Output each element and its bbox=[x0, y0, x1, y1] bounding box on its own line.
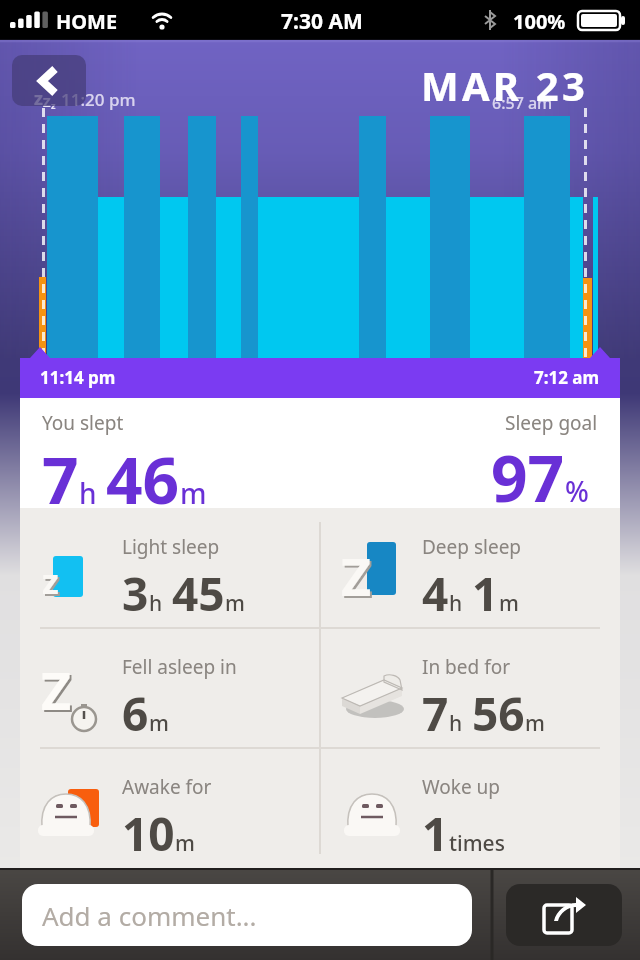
button[interactable]: Z bbox=[320, 508, 620, 628]
staticText: % bbox=[565, 472, 589, 510]
staticText: Z bbox=[41, 654, 72, 725]
button[interactable]: Add a comment... bbox=[22, 884, 472, 946]
staticText: z bbox=[34, 86, 43, 111]
staticText: z bbox=[51, 99, 56, 111]
staticText: 7:12 am bbox=[534, 366, 600, 389]
staticText: m bbox=[525, 709, 545, 738]
staticText: Awake for bbox=[122, 774, 212, 800]
staticText: 56 bbox=[472, 682, 525, 745]
staticText: MAR 23 bbox=[421, 58, 588, 112]
button[interactable]: z bbox=[20, 508, 320, 628]
staticText: In bed for bbox=[422, 654, 511, 680]
button[interactable] bbox=[506, 884, 622, 946]
staticText: Woke up bbox=[422, 774, 501, 800]
staticText: times bbox=[449, 829, 505, 858]
staticText: m bbox=[225, 589, 245, 618]
staticText: 46 bbox=[106, 436, 180, 520]
button[interactable]: Awake for bbox=[20, 748, 320, 868]
staticText: 7:30 AM bbox=[281, 7, 363, 36]
staticText: You slept bbox=[42, 410, 124, 436]
button[interactable]: Woke up bbox=[320, 748, 620, 868]
staticText: Z bbox=[43, 93, 51, 111]
staticText: 11:14 pm bbox=[40, 366, 116, 389]
staticText: Deep sleep bbox=[422, 534, 522, 560]
staticText: m bbox=[149, 709, 169, 738]
staticText: 6 bbox=[122, 682, 149, 745]
staticText: m bbox=[180, 474, 207, 512]
staticText: Add a comment... bbox=[42, 898, 257, 933]
staticText: 3 bbox=[122, 562, 149, 625]
staticText: 7 bbox=[422, 682, 449, 745]
staticText: 11:20 pm bbox=[61, 88, 136, 111]
staticText: 10 bbox=[122, 802, 175, 865]
staticText: Light sleep bbox=[122, 534, 220, 560]
button[interactable]: Z bbox=[20, 628, 320, 748]
staticText: 6:57 am bbox=[492, 92, 553, 114]
staticText: h bbox=[449, 709, 463, 738]
staticText: m bbox=[175, 829, 195, 858]
staticText: z bbox=[44, 560, 61, 606]
staticText: h bbox=[149, 589, 163, 618]
staticText: m bbox=[499, 589, 519, 618]
staticText: Fell asleep in bbox=[122, 654, 237, 680]
staticText: h bbox=[449, 589, 463, 618]
staticText: 1 bbox=[472, 562, 499, 625]
staticText: 100% bbox=[513, 8, 566, 35]
staticText: z bbox=[42, 558, 59, 604]
button[interactable]: In bed for bbox=[320, 628, 620, 748]
staticText: Z bbox=[341, 540, 372, 611]
staticText: Z bbox=[343, 542, 374, 613]
staticText: 7 bbox=[42, 436, 79, 520]
staticText: HOME bbox=[56, 8, 118, 35]
staticText: h bbox=[79, 474, 97, 512]
staticText: Sleep goal bbox=[505, 410, 598, 436]
staticText: 4 bbox=[422, 562, 449, 625]
staticText: 45 bbox=[172, 562, 225, 625]
staticText: 1 bbox=[422, 802, 449, 865]
staticText: 97 bbox=[491, 434, 565, 506]
button[interactable] bbox=[12, 55, 86, 106]
staticText: Z bbox=[43, 656, 74, 727]
